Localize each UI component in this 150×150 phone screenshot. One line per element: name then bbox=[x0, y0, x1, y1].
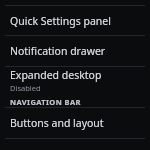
button[interactable]: Quick Settings panel bbox=[0, 6, 150, 35]
staticText: Expanded desktop bbox=[10, 68, 102, 82]
button[interactable]: Expanded desktop bbox=[0, 67, 150, 93]
staticText: Quick Settings panel bbox=[10, 14, 111, 28]
staticText: Buttons and layout bbox=[10, 116, 104, 130]
staticText: Disabled bbox=[10, 83, 41, 93]
staticText: NAVIGATION BAR bbox=[10, 97, 81, 107]
staticText: Notification drawer bbox=[10, 44, 106, 58]
button[interactable]: Buttons and layout bbox=[0, 108, 150, 138]
button[interactable]: Notification drawer bbox=[0, 36, 150, 66]
